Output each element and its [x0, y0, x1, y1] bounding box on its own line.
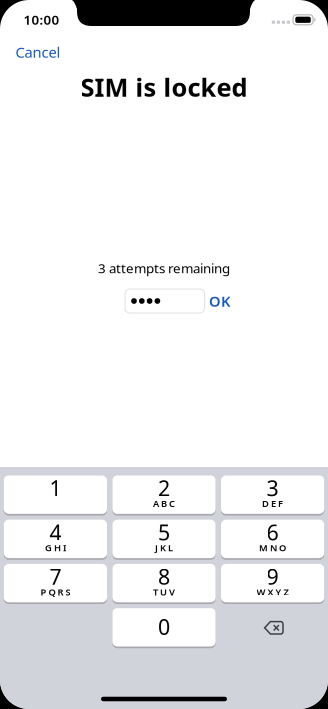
- button[interactable]: 7: [4, 564, 107, 603]
- button[interactable]: Delete: [221, 609, 324, 647]
- staticText: M N O: [259, 541, 286, 554]
- staticText: 3: [267, 474, 279, 502]
- button[interactable]: 0: [112, 609, 216, 647]
- staticText: SIM is locked: [80, 70, 247, 104]
- button[interactable]: 6: [221, 520, 324, 559]
- staticText: 7: [49, 562, 61, 590]
- staticText: 6: [267, 518, 279, 546]
- button[interactable]: 1: [4, 476, 107, 514]
- staticText: T U V: [153, 586, 175, 598]
- staticText: 0: [158, 613, 170, 641]
- staticText: 8: [158, 562, 170, 590]
- staticText: W X Y Z: [257, 586, 289, 598]
- staticText: 10:00: [23, 11, 59, 28]
- staticText: A B C: [153, 497, 175, 510]
- button[interactable]: Cancel: [0, 35, 76, 69]
- staticText: 4: [49, 518, 61, 546]
- staticText: G H I: [45, 541, 66, 554]
- button[interactable]: 3: [221, 476, 324, 514]
- button[interactable]: OK: [202, 285, 237, 317]
- staticText: 3 attempts remaining: [98, 259, 230, 277]
- staticText: J K L: [155, 541, 173, 554]
- button[interactable]: 5: [112, 520, 216, 559]
- staticText: 9: [267, 562, 279, 590]
- staticText: Cancel: [15, 42, 60, 62]
- staticText: 1: [49, 474, 61, 502]
- button[interactable]: 2: [112, 476, 216, 514]
- staticText: 2: [158, 474, 170, 502]
- button[interactable]: 8: [112, 564, 216, 603]
- button[interactable]: 9: [221, 564, 324, 603]
- staticText: OK: [209, 291, 230, 311]
- button[interactable]: 4: [4, 520, 107, 559]
- staticText: 5: [158, 518, 170, 546]
- staticText: P Q R S: [40, 586, 70, 598]
- staticText: D E F: [262, 497, 283, 510]
